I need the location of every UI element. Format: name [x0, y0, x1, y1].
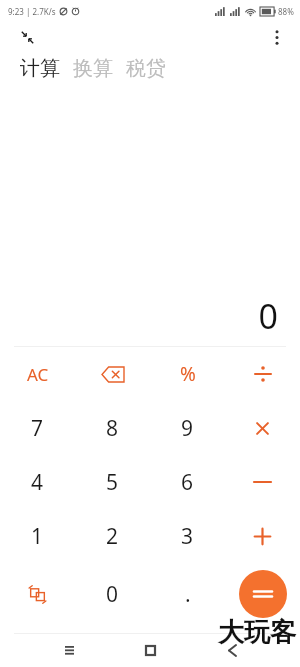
staticText: 7: [31, 414, 44, 443]
staticText: 9: [181, 414, 194, 443]
button[interactable]: Divide: [225, 347, 300, 401]
button[interactable]: 换算: [73, 54, 113, 83]
staticText: AC: [27, 363, 49, 386]
staticText: 0: [106, 580, 119, 609]
button[interactable]: 0: [75, 563, 150, 625]
staticText: 换算: [73, 56, 113, 81]
staticText: 9:23 | 2.7K/s: [8, 6, 56, 17]
staticText: .: [185, 580, 191, 609]
button[interactable]: 8: [75, 401, 150, 455]
button[interactable]: 7: [0, 401, 75, 455]
button[interactable]: 1: [0, 509, 75, 563]
button[interactable]: More options: [264, 24, 290, 50]
staticText: 计算: [20, 56, 60, 81]
staticText: 1: [31, 522, 44, 551]
button[interactable]: Back: [219, 637, 245, 663]
staticText: %: [180, 361, 196, 387]
staticText: 6: [181, 468, 194, 497]
button[interactable]: .: [150, 563, 225, 625]
staticText: 大玩客: [218, 616, 296, 649]
button[interactable]: 2: [75, 509, 150, 563]
staticText: 88%: [278, 6, 294, 17]
button[interactable]: 税贷: [126, 54, 166, 83]
button[interactable]: Multiply: [225, 401, 300, 455]
staticText: 税贷: [126, 56, 166, 81]
button[interactable]: Recents: [56, 637, 82, 663]
button[interactable]: Home: [137, 637, 163, 663]
button[interactable]: Minus: [225, 455, 300, 509]
staticText: 5: [106, 468, 119, 497]
staticText: 8: [106, 414, 119, 443]
button[interactable]: 9: [150, 401, 225, 455]
button[interactable]: 4: [0, 455, 75, 509]
button[interactable]: Backspace: [75, 347, 150, 401]
button[interactable]: 计算: [20, 54, 60, 83]
staticText: 4: [31, 468, 44, 497]
button[interactable]: AC: [0, 347, 75, 401]
staticText: 3: [181, 522, 194, 551]
staticText: 0: [258, 293, 278, 339]
button[interactable]: 6: [150, 455, 225, 509]
button[interactable]: 3: [150, 509, 225, 563]
button[interactable]: Equals: [239, 570, 287, 618]
staticText: 2: [106, 522, 119, 551]
button[interactable]: 5: [75, 455, 150, 509]
button[interactable]: %: [150, 347, 225, 401]
button[interactable]: Convert: [0, 563, 75, 625]
button[interactable]: Collapse: [14, 24, 40, 50]
button[interactable]: Plus: [225, 509, 300, 563]
